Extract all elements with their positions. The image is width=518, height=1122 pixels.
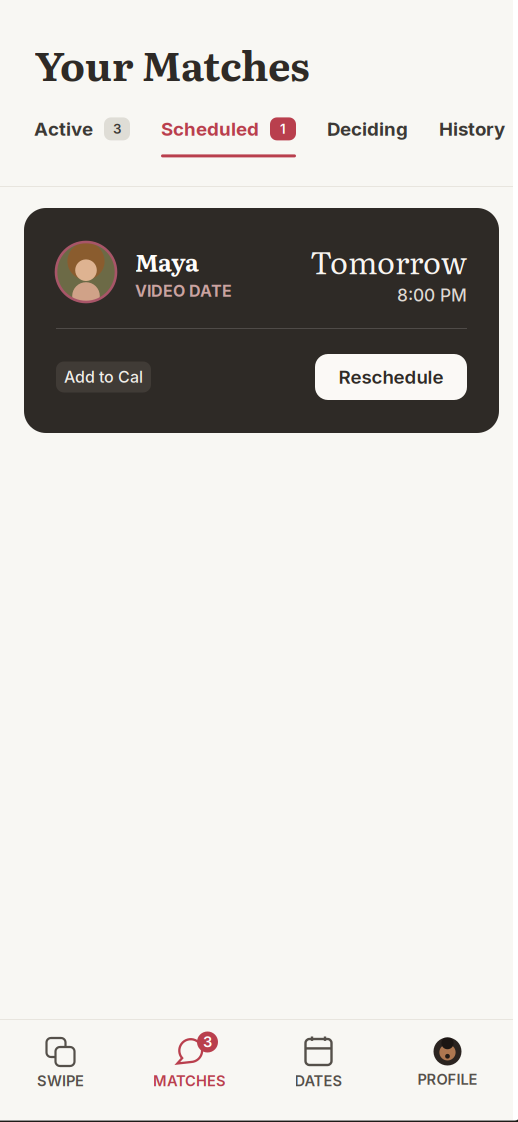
button[interactable]: DATES <box>254 1036 383 1088</box>
staticText: Reschedule <box>338 366 443 388</box>
staticText: PROFILE <box>417 1071 477 1088</box>
button[interactable]: Add to Cal <box>56 361 151 392</box>
button[interactable]: History <box>439 118 505 157</box>
button[interactable]: 3 <box>125 1036 254 1088</box>
button[interactable]: Active <box>34 117 130 157</box>
staticText: Deciding <box>327 118 408 140</box>
button[interactable]: Scheduled <box>161 117 296 157</box>
staticText: DATES <box>294 1072 342 1090</box>
staticText: VIDEO DATE <box>135 281 232 300</box>
staticText: Add to Cal <box>64 367 143 387</box>
staticText: 3 <box>203 1033 212 1051</box>
staticText: Your Matches <box>35 34 310 93</box>
staticText: MATCHES <box>153 1072 226 1090</box>
staticText: Active <box>34 118 93 140</box>
staticText: 8:00 PM <box>397 285 467 306</box>
staticText: Scheduled <box>161 118 259 140</box>
staticText: History <box>439 118 505 140</box>
staticText: 3 <box>113 121 121 137</box>
staticText: SWIPE <box>37 1072 84 1090</box>
staticText: 1 <box>280 121 286 137</box>
button[interactable]: PROFILE <box>383 1037 512 1086</box>
button[interactable]: Reschedule <box>315 354 467 400</box>
staticText: Maya <box>135 243 199 279</box>
button[interactable]: SWIPE <box>0 1036 125 1088</box>
staticText: Tomorrow <box>310 238 467 284</box>
button[interactable]: Deciding <box>327 118 408 157</box>
